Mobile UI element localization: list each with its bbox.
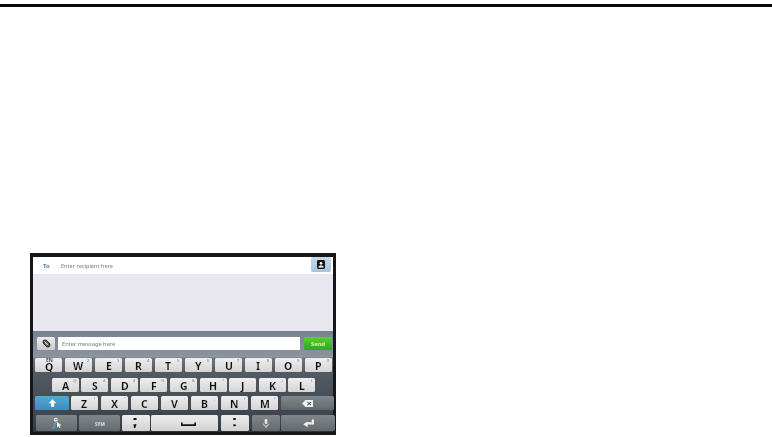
button[interactable]: Y <box>185 358 212 372</box>
staticText: 5 <box>177 358 180 363</box>
staticText: X <box>111 397 119 410</box>
staticText: 2 <box>87 358 90 363</box>
staticText: - <box>252 378 254 383</box>
staticText: C <box>141 397 148 410</box>
staticText: U <box>225 359 233 372</box>
staticText: A <box>62 379 70 392</box>
staticText: 4 <box>147 358 150 363</box>
staticText: F <box>151 379 157 392</box>
button[interactable]: Change input method <box>36 415 77 431</box>
button[interactable]: E <box>95 358 122 372</box>
staticText: ' <box>155 396 156 401</box>
staticText: E <box>106 359 112 372</box>
staticText: V <box>171 397 178 410</box>
staticText: $ <box>133 378 136 383</box>
staticText: D <box>121 379 129 392</box>
staticText: O <box>284 359 293 372</box>
staticText: Enter recipient here <box>61 262 113 270</box>
staticText: Send <box>311 340 326 348</box>
staticText: Z <box>81 397 88 410</box>
button[interactable]: Enter message here <box>58 337 300 350</box>
button[interactable]: I <box>245 358 272 372</box>
button[interactable]: SYM <box>79 415 120 431</box>
staticText: @ <box>73 378 77 383</box>
button[interactable]: G <box>170 378 197 392</box>
button[interactable]: Attach <box>37 337 55 350</box>
button[interactable]: Send <box>304 337 332 350</box>
button[interactable]: N <box>221 396 248 410</box>
staticText: M <box>260 397 270 410</box>
staticText: B <box>201 397 208 410</box>
staticText: * <box>222 378 225 383</box>
button[interactable]: T <box>155 358 182 372</box>
button[interactable]: K <box>259 378 286 392</box>
staticText: % <box>161 378 165 383</box>
button[interactable]: U <box>215 358 242 372</box>
button[interactable]: J <box>229 378 256 392</box>
staticText: 0 <box>327 358 330 363</box>
staticText: P <box>315 359 322 372</box>
staticText: / <box>244 396 246 401</box>
staticText: ! <box>94 396 96 401</box>
staticText: SYM <box>95 421 105 427</box>
staticText: " <box>124 396 126 401</box>
button[interactable]: C <box>131 396 158 410</box>
staticText: : <box>184 396 186 401</box>
staticText: To <box>43 262 50 270</box>
button[interactable]: Semicolon <box>122 415 150 431</box>
button[interactable]: L <box>288 378 315 392</box>
staticText: ; <box>214 396 216 401</box>
staticText: Q <box>45 360 54 372</box>
staticText: 6 <box>207 358 210 363</box>
button[interactable]: Space <box>151 415 218 431</box>
staticText: J <box>241 379 245 392</box>
button[interactable]: Enter <box>281 415 335 431</box>
staticText: S <box>92 379 98 392</box>
button[interactable]: P <box>305 358 332 372</box>
button[interactable]: Voice input <box>252 415 280 431</box>
staticText: 9 <box>297 358 300 363</box>
button[interactable]: Z <box>71 396 98 410</box>
button[interactable]: Colon <box>221 415 249 431</box>
staticText: N <box>230 397 239 410</box>
staticText: T <box>165 359 172 372</box>
button[interactable]: R <box>125 358 152 372</box>
button[interactable]: M <box>251 396 278 410</box>
button[interactable]: Backspace <box>281 396 334 410</box>
staticText: H <box>209 379 218 392</box>
staticText: I <box>256 359 261 372</box>
button[interactable]: V <box>161 396 188 410</box>
staticText: 3 <box>117 358 120 363</box>
button[interactable]: W <box>65 358 92 372</box>
staticText: L <box>299 379 305 392</box>
staticText: & <box>192 378 195 383</box>
button[interactable]: A <box>52 378 79 392</box>
staticText: + <box>281 378 284 383</box>
staticText: R <box>135 359 142 372</box>
button[interactable]: F <box>140 378 167 392</box>
staticText: ( <box>311 378 313 383</box>
staticText: 8 <box>267 358 270 363</box>
button[interactable]: Shift <box>35 396 69 410</box>
staticText: ? <box>274 396 276 401</box>
button[interactable]: Pick contact <box>311 257 331 272</box>
button[interactable]: D <box>111 378 138 392</box>
button[interactable]: B <box>191 396 218 410</box>
button[interactable]: S <box>81 378 108 392</box>
staticText: 7 <box>237 358 240 363</box>
button[interactable]: H <box>200 378 227 392</box>
button[interactable]: O <box>275 358 302 372</box>
staticText: G <box>180 379 188 392</box>
button[interactable]: X <box>101 396 128 410</box>
staticText: W <box>73 359 84 372</box>
staticText: Y <box>195 359 202 372</box>
staticText: EN <box>46 358 53 364</box>
staticText: Enter message here <box>62 340 116 348</box>
button[interactable]: EN <box>35 358 62 372</box>
staticText: # <box>103 378 106 383</box>
staticText: K <box>269 379 276 392</box>
